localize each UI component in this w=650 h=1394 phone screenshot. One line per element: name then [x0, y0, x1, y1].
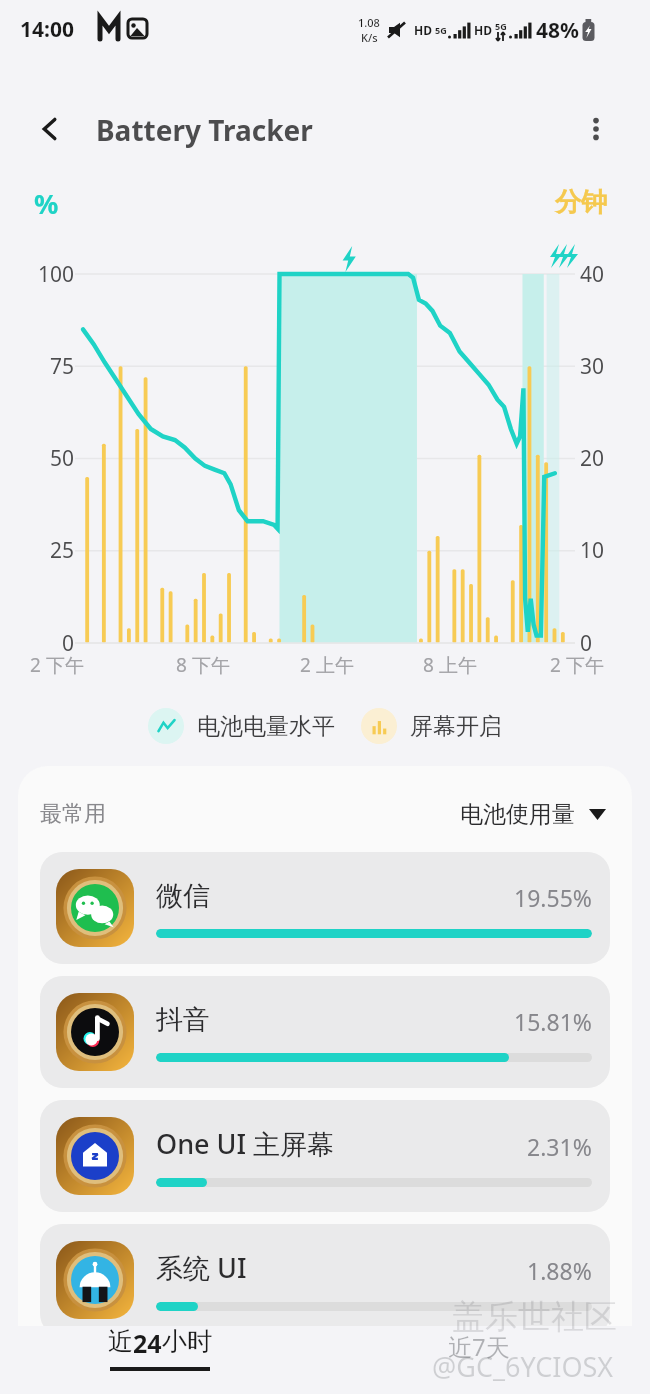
staticText: 10: [580, 536, 642, 565]
staticText: HD: [414, 22, 432, 38]
staticText: 分钟: [555, 186, 607, 219]
staticText: 抖音: [156, 1003, 210, 1037]
button[interactable]: 近: [108, 1326, 212, 1371]
button[interactable]: Back: [28, 107, 72, 151]
staticText: 0: [12, 629, 74, 658]
staticText: 40: [580, 260, 642, 289]
button[interactable]: 近7天: [448, 1330, 510, 1363]
staticText: 近7天: [448, 1330, 510, 1363]
staticText: 14:00: [20, 15, 74, 44]
staticText: 24: [133, 1326, 162, 1360]
staticText: 微信: [156, 879, 210, 913]
staticText: One UI 主屏幕: [156, 1125, 335, 1162]
staticText: 1.88%: [527, 1255, 592, 1286]
staticText: 最常用: [40, 800, 106, 828]
staticText: 15.81%: [514, 1006, 592, 1037]
staticText: 1.08: [358, 15, 380, 30]
staticText: 小时: [162, 1326, 212, 1357]
staticText: 盖乐世社区: [452, 1296, 617, 1338]
button[interactable]: 系统 UI: [40, 1224, 610, 1326]
staticText: K/s: [361, 30, 378, 45]
button[interactable]: 抖音: [40, 976, 610, 1088]
staticText: 48%: [536, 16, 579, 45]
staticText: 25: [12, 536, 74, 565]
staticText: @GC_6YCIOSX: [432, 1348, 614, 1385]
button[interactable]: One UI 主屏幕: [40, 1100, 610, 1212]
staticText: 2.31%: [527, 1131, 592, 1162]
staticText: 2 上午: [279, 652, 375, 678]
staticText: 20: [580, 444, 642, 473]
staticText: 电池电量水平: [197, 712, 335, 741]
staticText: 8 下午: [155, 652, 251, 678]
staticText: 屏幕开启: [410, 712, 502, 741]
button[interactable]: 微信: [40, 852, 610, 964]
staticText: 75: [12, 352, 74, 381]
button[interactable]: 电池使用量: [456, 796, 610, 833]
staticText: 5G: [495, 20, 507, 32]
staticText: 系统 UI: [156, 1249, 247, 1286]
staticText: 0: [580, 629, 642, 658]
staticText: 近: [108, 1326, 133, 1357]
staticText: 电池使用量: [460, 800, 575, 829]
staticText: 19.55%: [514, 882, 592, 913]
button[interactable]: More options: [572, 105, 620, 153]
staticText: 8 上午: [402, 652, 498, 678]
staticText: Battery Tracker: [96, 111, 313, 149]
staticText: 30: [580, 352, 642, 381]
staticText: 2 下午: [529, 652, 625, 678]
staticText: 100: [12, 260, 74, 289]
staticText: %: [34, 185, 59, 222]
staticText: 2 下午: [9, 652, 105, 678]
staticText: 50: [12, 444, 74, 473]
staticText: HD: [474, 22, 492, 38]
staticText: 5G: [435, 24, 447, 36]
